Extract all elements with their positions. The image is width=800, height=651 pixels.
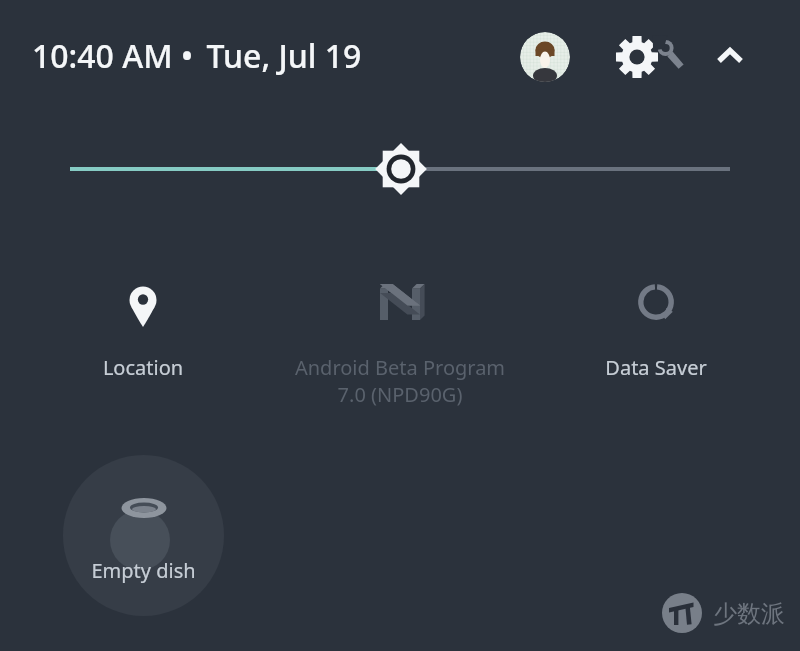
button[interactable]: Settings <box>608 25 684 89</box>
staticText: Android Beta Program <box>260 354 540 381</box>
staticText: Location <box>3 354 283 381</box>
staticText: 7.0 (NPD90G) <box>260 381 540 408</box>
button[interactable]: Brightness <box>48 139 752 201</box>
button[interactable]: Empty dish <box>63 455 224 616</box>
staticText: 少数派 <box>713 599 785 629</box>
staticText: Empty dish <box>91 557 196 584</box>
button[interactable]: Location <box>3 276 283 381</box>
button[interactable]: User account <box>520 32 570 82</box>
button[interactable]: Collapse quick settings <box>706 32 754 80</box>
staticText: Data Saver <box>516 354 796 381</box>
button[interactable]: Android Beta Program <box>260 276 540 408</box>
staticText: 10:40 AM • Tue, Jul 19 <box>32 34 362 78</box>
button[interactable]: Data Saver <box>516 276 796 381</box>
